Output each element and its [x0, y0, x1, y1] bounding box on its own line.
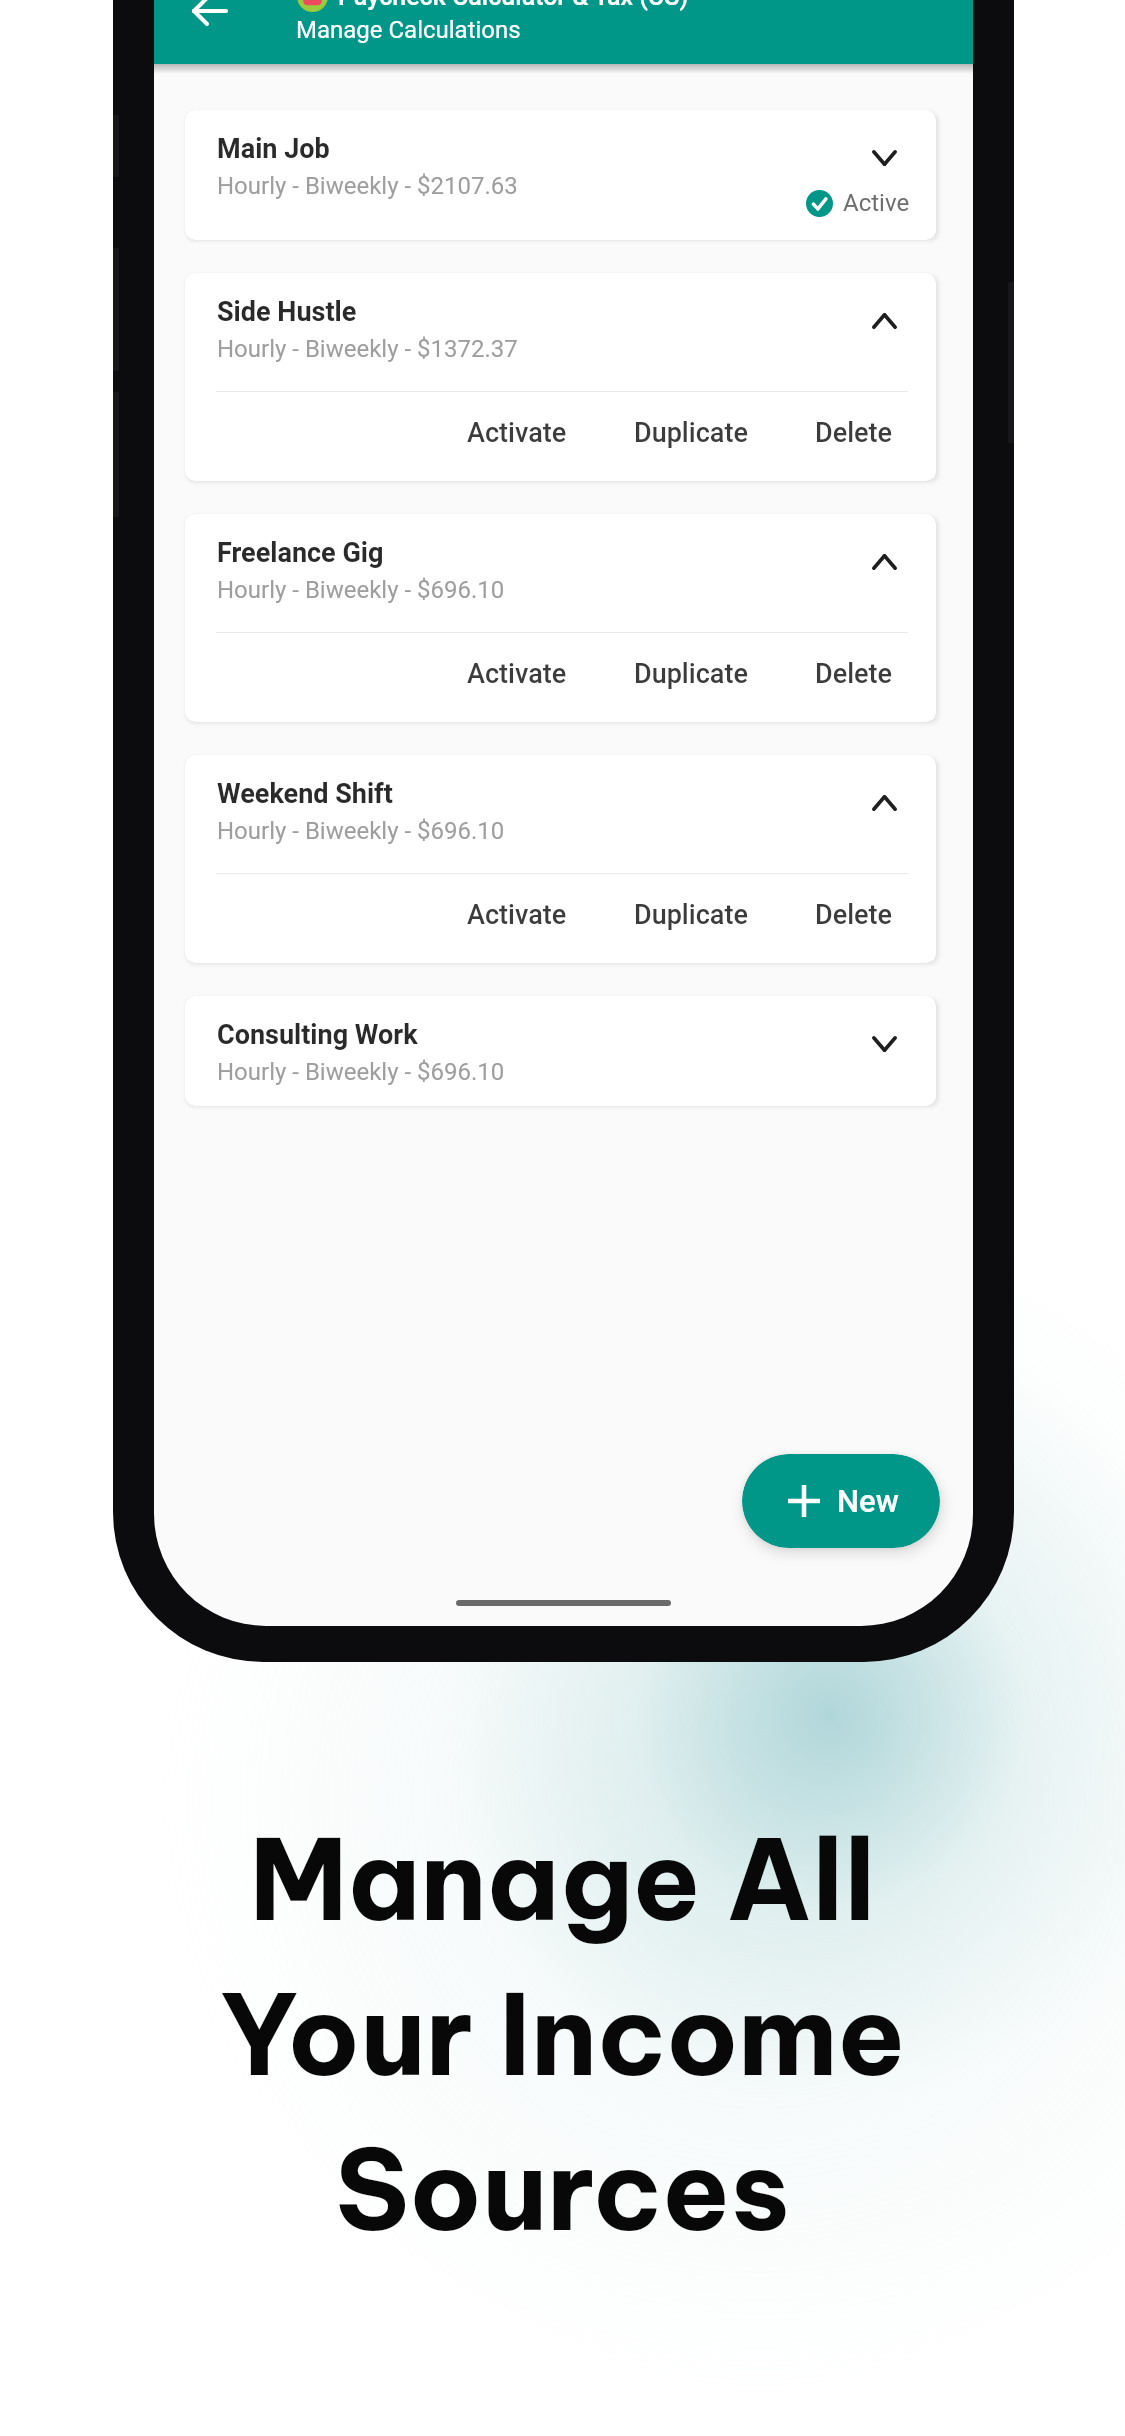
- button[interactable]: Delete: [803, 889, 905, 941]
- button[interactable]: Weekend Shift: [185, 755, 936, 860]
- button[interactable]: Collapse: [856, 293, 912, 349]
- button[interactable]: Freelance Gig: [185, 514, 936, 619]
- staticText: Weekend Shift: [217, 778, 393, 810]
- staticText: Manage Calculations: [296, 16, 521, 44]
- staticText: Hourly - Biweekly - $696.10: [217, 576, 505, 604]
- staticText: Delete: [815, 658, 893, 690]
- button[interactable]: Expand: [856, 130, 912, 186]
- button[interactable]: Activate: [455, 889, 579, 941]
- button[interactable]: Activate: [455, 648, 579, 700]
- staticText: Activate: [467, 658, 567, 690]
- staticText: Duplicate: [634, 417, 748, 449]
- button[interactable]: Consulting Work: [185, 996, 936, 1106]
- staticText: Active: [843, 189, 910, 217]
- button[interactable]: Duplicate: [622, 407, 760, 459]
- staticText: Hourly - Biweekly - $1372.37: [217, 335, 518, 363]
- staticText: New: [837, 1483, 899, 1519]
- button[interactable]: New: [742, 1454, 940, 1548]
- staticText: Delete: [815, 899, 893, 931]
- button[interactable]: Duplicate: [622, 889, 760, 941]
- button[interactable]: Delete: [803, 407, 905, 459]
- button[interactable]: Activate: [455, 407, 579, 459]
- staticText: Main Job: [217, 133, 330, 165]
- staticText: Duplicate: [634, 658, 748, 690]
- button[interactable]: Duplicate: [622, 648, 760, 700]
- button[interactable]: Back: [174, 0, 246, 47]
- staticText: Consulting Work: [217, 1019, 418, 1051]
- staticText: Activate: [467, 899, 567, 931]
- staticText: Delete: [815, 417, 893, 449]
- staticText: Side Hustle: [217, 296, 357, 328]
- staticText: Hourly - Biweekly - $2107.63: [217, 172, 518, 200]
- button[interactable]: Delete: [803, 648, 905, 700]
- staticText: Hourly - Biweekly - $696.10: [217, 1058, 505, 1086]
- staticText: Manage All Your Income Sources: [219, 1809, 906, 2259]
- button[interactable]: Expand: [856, 1016, 912, 1072]
- button[interactable]: Main Job: [185, 110, 936, 240]
- staticText: Paycheck Calculator & Tax (US): [338, 0, 689, 11]
- staticText: Freelance Gig: [217, 537, 384, 569]
- button[interactable]: Collapse: [856, 775, 912, 831]
- button[interactable]: Collapse: [856, 534, 912, 590]
- staticText: Hourly - Biweekly - $696.10: [217, 817, 505, 845]
- staticText: Duplicate: [634, 899, 748, 931]
- button[interactable]: Side Hustle: [185, 273, 936, 378]
- staticText: Activate: [467, 417, 567, 449]
